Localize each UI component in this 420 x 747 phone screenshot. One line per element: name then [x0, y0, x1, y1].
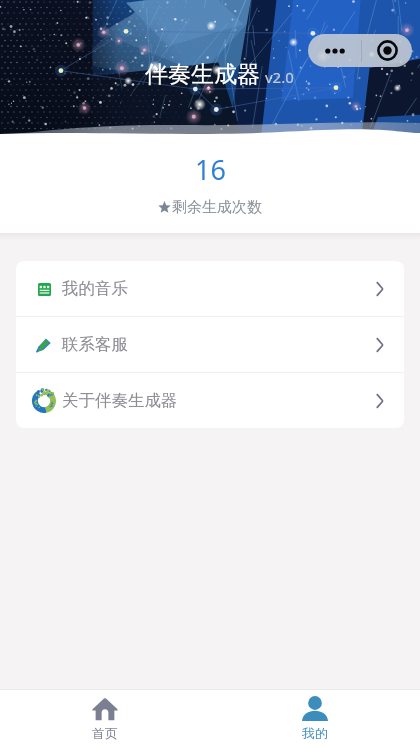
- staticText: 16: [195, 151, 226, 188]
- staticText: 首页: [92, 725, 118, 741]
- staticText: 我的音乐: [62, 278, 128, 299]
- staticText: 关于伴奏生成器: [62, 390, 178, 411]
- button[interactable]: 联系客服: [16, 317, 404, 372]
- staticText: 联系客服: [62, 334, 128, 355]
- button[interactable]: 首页: [0, 690, 210, 747]
- staticText: 伴奏生成器: [145, 60, 260, 89]
- staticText: 我的: [302, 725, 328, 741]
- button[interactable]: 我的: [210, 690, 420, 747]
- button[interactable]: Close: [362, 34, 412, 67]
- button[interactable]: More: [308, 34, 361, 67]
- button[interactable]: 我的音乐: [16, 261, 404, 316]
- staticText: 剩余生成次数: [172, 198, 262, 217]
- staticText: v2.0: [265, 67, 294, 87]
- button[interactable]: 关于伴奏生成器: [16, 373, 404, 428]
